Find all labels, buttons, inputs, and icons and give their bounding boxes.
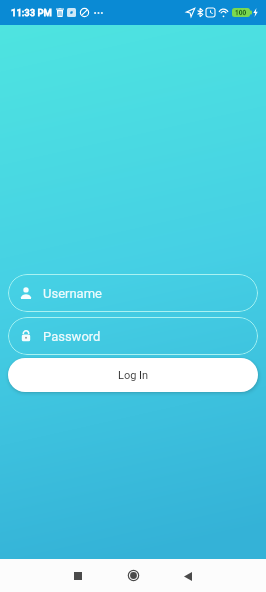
button[interactable]: Recent apps — [62, 560, 94, 592]
staticText: 100 — [235, 9, 247, 17]
staticText: 11:33 PM — [11, 7, 52, 18]
button[interactable]: Home — [117, 559, 149, 591]
button[interactable]: Password — [8, 317, 258, 355]
button[interactable]: Username — [8, 274, 258, 312]
button[interactable]: Log In — [8, 358, 258, 392]
staticText: Username — [43, 286, 102, 301]
button[interactable]: Back — [172, 560, 204, 592]
staticText: Log In — [118, 369, 149, 382]
staticText: Password — [43, 329, 101, 344]
